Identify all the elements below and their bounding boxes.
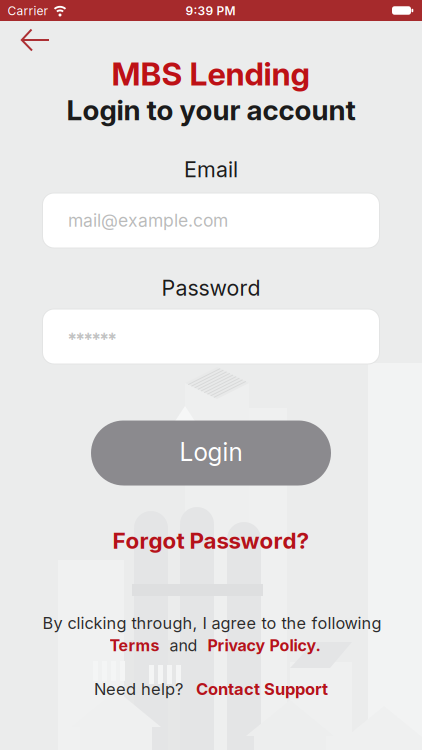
button[interactable]: Login (91, 420, 331, 485)
staticText: mail@example.com (68, 210, 228, 231)
staticText: Contact Support (196, 679, 328, 699)
staticText: and (159, 636, 207, 655)
staticText: Password (161, 275, 260, 301)
button[interactable]: Privacy Policy. (207, 636, 320, 655)
button[interactable]: Contact Support (196, 679, 328, 699)
staticText: 9:39 PM (185, 4, 235, 18)
staticText: Need help? (94, 679, 183, 699)
button[interactable] (13, 23, 57, 57)
staticText: Carrier (7, 4, 48, 18)
staticText: Login (179, 437, 242, 467)
staticText: ✱✱✱✱✱✱ (68, 331, 116, 342)
staticText: Terms (109, 636, 159, 655)
button[interactable]: Forgot Password? (112, 527, 309, 554)
staticText: Privacy Policy. (207, 636, 320, 655)
staticText: Login to your account (66, 93, 355, 127)
staticText: MBS Lending (111, 55, 310, 93)
staticText: Email (184, 156, 238, 182)
staticText: Forgot Password? (112, 527, 309, 554)
staticText: By clicking through, I agree to the foll… (42, 613, 381, 633)
button[interactable]: Terms (109, 636, 159, 655)
